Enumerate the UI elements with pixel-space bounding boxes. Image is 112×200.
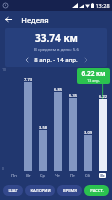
button[interactable]: 6.22 [95,67,110,171]
button[interactable]: 6.22 км [77,68,110,84]
staticText: Ср [40,173,45,178]
button[interactable]: Пт [65,171,80,180]
button[interactable]: Сб [80,171,95,180]
button[interactable]: Back [0,11,17,28]
staticText: ВРЕМЯ [63,188,77,194]
button[interactable]: Вт [21,171,35,180]
button[interactable]: 3.09 [80,67,95,171]
staticText: Неделя [21,15,49,25]
button[interactable]: Next week [81,55,90,64]
button[interactable]: Пн [7,171,21,180]
staticText: Пн [11,173,17,178]
staticText: В среднем в день: 5.6 [34,46,79,52]
staticText: Вс [100,173,105,178]
button[interactable]: Previous week [22,55,31,64]
staticText: 13:28 [95,2,110,9]
button[interactable]: 6.85 [50,67,65,171]
button[interactable]: Чт [50,171,65,180]
staticText: 3.58 [39,125,47,130]
staticText: 33.74 км [35,31,78,45]
staticText: 6.22 [99,94,107,99]
button[interactable]: ВРЕМЯ [57,185,82,196]
staticText: 13 апр. [87,78,100,83]
button[interactable]: Вс [95,171,110,180]
button[interactable]: 3.58 [35,67,50,171]
staticText: КАЛОРИИ [30,188,51,194]
staticText: ШАГ [8,188,18,194]
staticText: Вт [26,173,31,178]
staticText: 6.22 км [81,69,106,78]
staticText: РАССТ. [90,188,104,194]
staticText: 7.73 [24,77,32,82]
staticText: 6.85 [54,87,62,92]
button[interactable]: 6.35 [65,67,80,171]
staticText: 0 [2,167,4,171]
staticText: 10 [2,68,6,72]
staticText: 6.35 [69,93,77,98]
staticText: Сб [85,173,90,178]
button[interactable]: РАССТ. [84,185,109,196]
staticText: 3.09 [84,130,92,135]
button[interactable]: ШАГ [3,185,23,196]
staticText: Чт [55,173,60,178]
button[interactable]: 7.73 [21,67,35,171]
button[interactable]: Ср [35,171,50,180]
staticText: Пт [70,173,75,178]
staticText: 8 апр. - 14 апр. [34,56,78,64]
button[interactable]: КАЛОРИИ [25,185,55,196]
